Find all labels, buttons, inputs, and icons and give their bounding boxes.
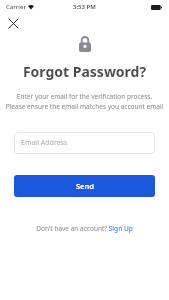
staticText: Please ensure the email matches you acco… (0, 102, 169, 111)
staticText: Carrier (6, 3, 26, 11)
button[interactable]: Don't have an account? Sign Up (32, 222, 137, 235)
staticText: 3:53 PM (73, 3, 96, 11)
button[interactable]: Close (5, 15, 21, 31)
button[interactable]: Email Address (14, 132, 155, 154)
staticText: Don't have an account? Sign Up (36, 224, 133, 233)
staticText: Send (76, 181, 94, 191)
staticText: Enter your email for the verification pr… (0, 92, 169, 101)
staticText: Email Address (21, 138, 68, 148)
staticText: Forgot Password? (0, 62, 169, 81)
button[interactable]: Send (14, 175, 155, 197)
